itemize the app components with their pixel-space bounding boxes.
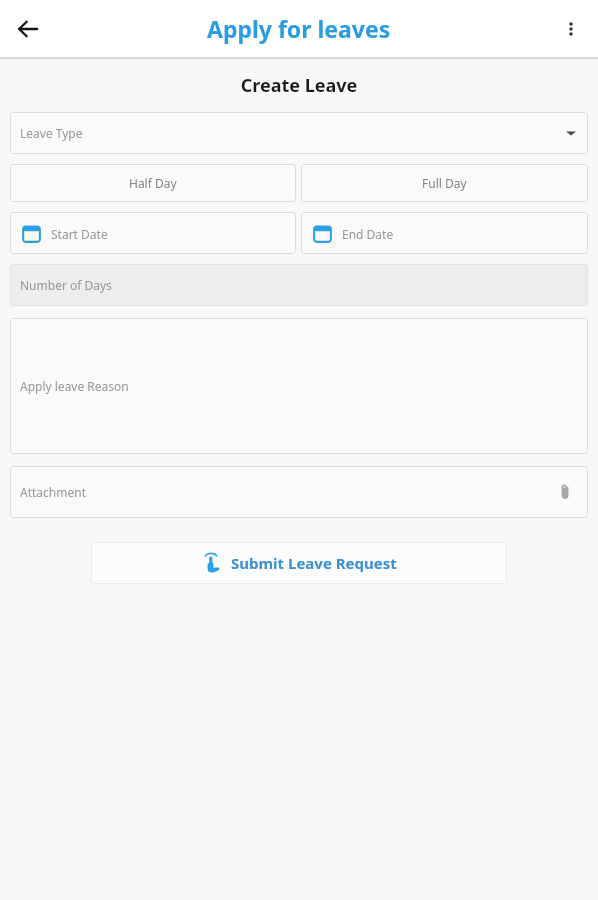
- button[interactable]: Leave Type: [10, 112, 588, 154]
- button[interactable]: Full Day: [301, 164, 588, 202]
- button[interactable]: Apply leave Reason: [10, 318, 588, 454]
- staticText: Apply for leaves: [207, 13, 391, 44]
- button[interactable]: Half Day: [10, 164, 296, 202]
- button[interactable]: End Date: [301, 212, 588, 254]
- staticText: Start Date: [51, 226, 108, 242]
- staticText: Create Leave: [0, 73, 598, 98]
- staticText: Number of Days: [20, 277, 112, 293]
- staticText: Full Day: [422, 175, 467, 191]
- button[interactable]: Back: [6, 7, 50, 51]
- staticText: Attachment: [20, 484, 86, 500]
- button[interactable]: Attachment: [10, 466, 588, 518]
- button[interactable]: Attach file: [552, 479, 578, 505]
- staticText: Apply leave Reason: [20, 378, 129, 394]
- button[interactable]: Number of Days: [10, 264, 588, 306]
- staticText: Submit Leave Request: [231, 553, 397, 573]
- button[interactable]: Submit Leave Request: [91, 542, 507, 584]
- staticText: Leave Type: [20, 125, 83, 141]
- button[interactable]: More options: [550, 8, 592, 50]
- staticText: End Date: [342, 226, 394, 242]
- button[interactable]: Start Date: [10, 212, 296, 254]
- staticText: Half Day: [129, 175, 177, 191]
